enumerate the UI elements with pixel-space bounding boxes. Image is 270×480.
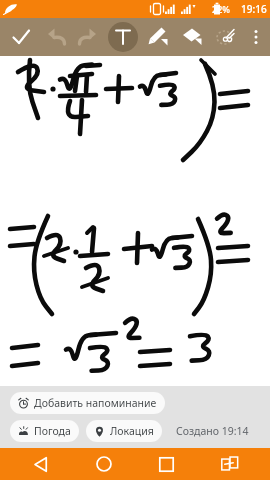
button[interactable]: More options: [242, 22, 270, 52]
staticText: Локация: [110, 424, 154, 438]
button[interactable]: Back: [19, 448, 63, 480]
button[interactable]: Home: [82, 448, 126, 480]
button[interactable]: Recent apps: [144, 448, 188, 480]
button[interactable]: Text: [106, 20, 140, 54]
staticText: 19:16: [241, 2, 267, 16]
button[interactable]: Добавить напоминание: [10, 392, 165, 414]
button[interactable]: Redo: [72, 21, 104, 53]
button[interactable]: Погода: [10, 420, 79, 442]
button[interactable]: Локация: [86, 420, 162, 442]
staticText: Создано 19:14: [176, 424, 249, 438]
button[interactable]: Lasso select: [210, 21, 242, 53]
button[interactable]: Split screen: [207, 448, 251, 480]
staticText: 22%: [212, 3, 230, 15]
staticText: Погода: [34, 424, 71, 438]
button[interactable]: Done: [4, 20, 38, 54]
button[interactable]: Pen: [142, 21, 174, 53]
staticText: Добавить напоминание: [34, 396, 157, 410]
button[interactable]: Undo: [40, 21, 72, 53]
button[interactable]: Eraser: [176, 21, 208, 53]
